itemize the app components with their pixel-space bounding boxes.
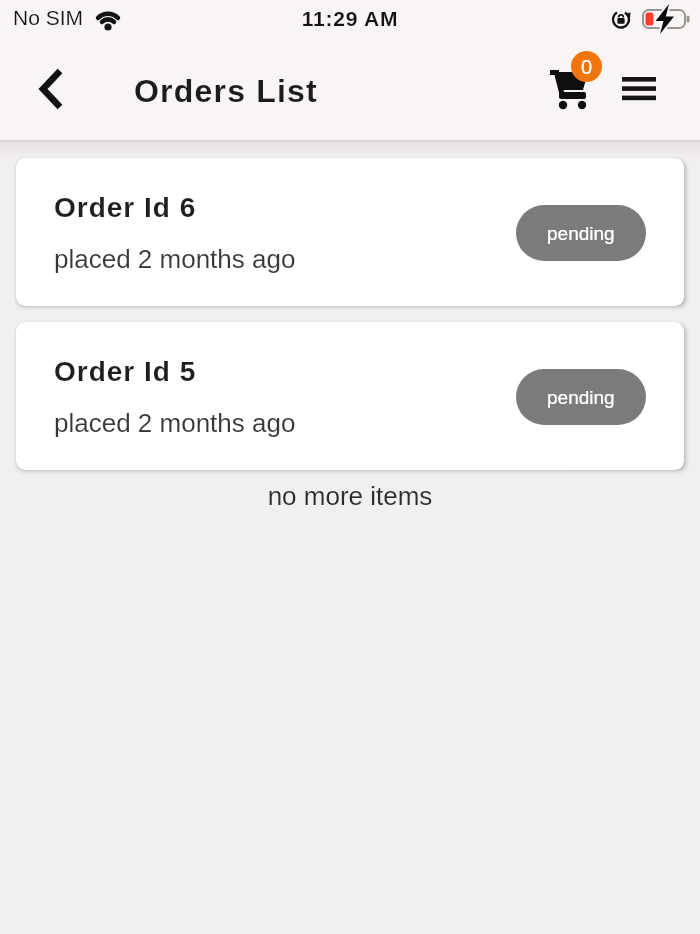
button[interactable]: Order Id 6: [16, 158, 684, 306]
staticText: Orders List: [134, 73, 318, 109]
button[interactable]: pending: [516, 205, 646, 261]
button[interactable]: pending: [516, 369, 646, 425]
staticText: placed 2 months ago: [54, 408, 296, 437]
staticText: 0: [581, 56, 593, 78]
button[interactable]: [622, 77, 656, 102]
staticText: Order Id 6: [54, 192, 197, 223]
staticText: no more items: [0, 481, 700, 510]
staticText: 11:29 AM: [0, 7, 700, 30]
staticText: Order Id 5: [54, 356, 197, 387]
staticText: pending: [547, 223, 615, 244]
staticText: placed 2 months ago: [54, 244, 296, 273]
staticText: No SIM: [13, 6, 84, 29]
staticText: pending: [547, 387, 615, 408]
button[interactable]: 0: [544, 48, 604, 112]
button[interactable]: Order Id 5: [16, 322, 684, 470]
button[interactable]: [36, 66, 66, 112]
